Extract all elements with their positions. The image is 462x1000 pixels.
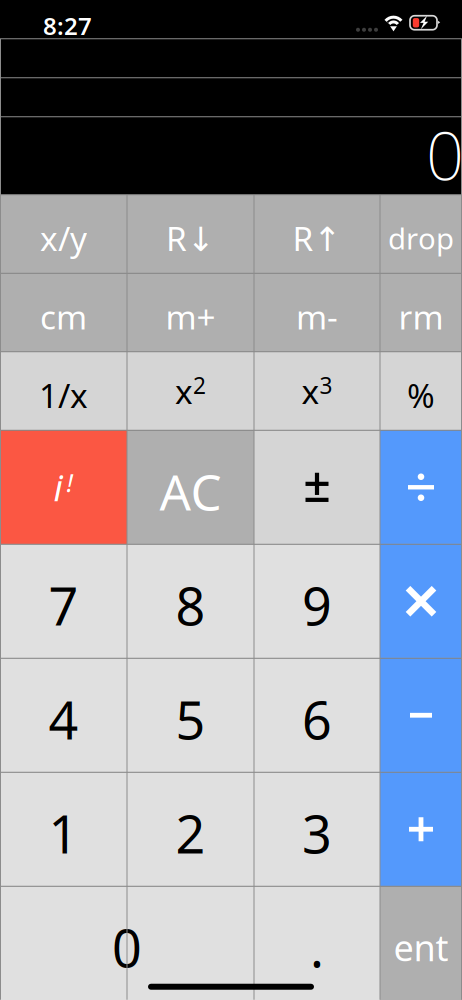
button[interactable]: 3 xyxy=(254,772,380,886)
button[interactable]: m- xyxy=(254,273,380,352)
staticText: m+ xyxy=(165,294,215,339)
button[interactable]: 2 xyxy=(127,772,254,886)
staticText: 0 xyxy=(112,913,142,982)
staticText: drop xyxy=(388,218,454,257)
staticText: 3 xyxy=(302,799,332,868)
staticText: 8:27 xyxy=(43,10,92,42)
button[interactable]: 6 xyxy=(254,658,380,772)
button[interactable]: rm xyxy=(380,273,462,352)
staticText: 4 xyxy=(48,685,78,754)
button[interactable]: Plus minus xyxy=(254,430,380,544)
staticText: x2 xyxy=(175,369,206,413)
staticText: % xyxy=(407,373,435,417)
button[interactable]: 4 xyxy=(0,658,127,772)
staticText: x3 xyxy=(301,369,332,413)
button[interactable]: 7 xyxy=(0,544,127,658)
staticText: R↑ xyxy=(292,216,341,260)
button[interactable]: ent xyxy=(380,886,462,1000)
button[interactable]: AC xyxy=(127,430,254,544)
staticText: cm xyxy=(40,294,87,339)
staticText: 9 xyxy=(302,571,332,640)
button[interactable]: drop xyxy=(380,195,462,273)
staticText: 2 xyxy=(175,799,205,868)
staticText: 1 xyxy=(48,799,78,868)
button[interactable]: 5 xyxy=(127,658,254,772)
button[interactable]: x3 xyxy=(254,352,380,430)
staticText: 7 xyxy=(48,571,78,640)
button[interactable]: m+ xyxy=(127,273,254,352)
staticText: R↓ xyxy=(166,216,215,260)
staticText: i ! xyxy=(53,463,73,511)
staticText: 6 xyxy=(302,685,332,754)
staticText: 0 xyxy=(426,110,462,199)
button[interactable]: x/y xyxy=(0,195,127,273)
staticText: 1/x xyxy=(39,373,88,417)
button[interactable]: Multiply xyxy=(380,544,462,658)
staticText: m- xyxy=(296,294,338,339)
staticText: ent xyxy=(393,923,448,971)
button[interactable]: 9 xyxy=(254,544,380,658)
button[interactable]: i ! xyxy=(0,430,127,544)
button[interactable]: % xyxy=(380,352,462,430)
button[interactable]: 1/x xyxy=(0,352,127,430)
button[interactable]: R↑ xyxy=(254,195,380,273)
button[interactable]: R↓ xyxy=(127,195,254,273)
button[interactable]: 1 xyxy=(0,772,127,886)
button[interactable]: . xyxy=(254,886,380,1000)
button[interactable]: 0 xyxy=(0,886,254,1000)
button[interactable]: x2 xyxy=(127,352,254,430)
button[interactable]: Minus xyxy=(380,658,462,772)
staticText: x/y xyxy=(40,216,87,260)
staticText: rm xyxy=(398,294,443,339)
staticText: . xyxy=(310,913,324,982)
button[interactable]: cm xyxy=(0,273,127,352)
staticText: 5 xyxy=(175,685,205,754)
button[interactable]: Divide xyxy=(380,430,462,544)
staticText: 8 xyxy=(175,571,205,640)
staticText: AC xyxy=(159,458,221,524)
button[interactable]: Plus xyxy=(380,772,462,886)
button[interactable]: 8 xyxy=(127,544,254,658)
